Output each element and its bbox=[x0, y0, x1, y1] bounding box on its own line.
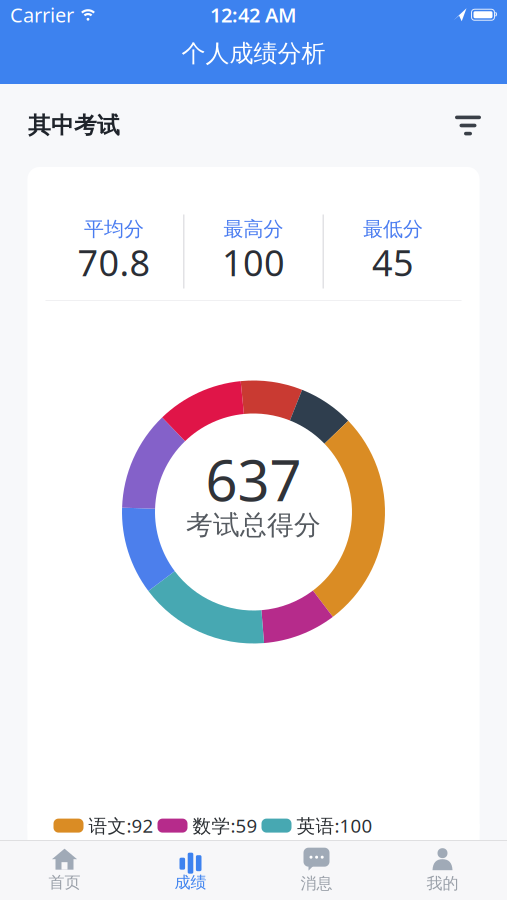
staticText: 最高分 bbox=[223, 217, 283, 241]
staticText: Carrier bbox=[10, 1, 74, 28]
button[interactable]: 我的 bbox=[379, 842, 505, 898]
staticText: 考试总得分 bbox=[186, 509, 321, 542]
staticText: 其中考试 bbox=[28, 112, 120, 139]
button[interactable]: 首页 bbox=[1, 842, 127, 898]
button[interactable]: 成绩 bbox=[127, 842, 253, 898]
staticText: 12:42 AM bbox=[210, 1, 297, 28]
staticText: 45 bbox=[372, 238, 414, 286]
staticText: 数学:59 bbox=[192, 813, 257, 838]
staticText: 我的 bbox=[426, 874, 458, 893]
staticText: 637 bbox=[205, 442, 301, 517]
staticText: 英语:100 bbox=[296, 813, 372, 838]
staticText: 个人成绩分析 bbox=[181, 39, 325, 68]
staticText: 首页 bbox=[48, 873, 80, 892]
staticText: 最低分 bbox=[363, 217, 423, 241]
button[interactable]: 消息 bbox=[253, 842, 379, 898]
staticText: 消息 bbox=[300, 874, 332, 893]
button[interactable]: Filter bbox=[451, 110, 485, 140]
staticText: 平均分 bbox=[84, 217, 144, 241]
staticText: 语文:92 bbox=[88, 813, 153, 838]
staticText: 成绩 bbox=[174, 873, 206, 892]
staticText: 100 bbox=[222, 238, 285, 286]
staticText: 70.8 bbox=[77, 238, 150, 286]
